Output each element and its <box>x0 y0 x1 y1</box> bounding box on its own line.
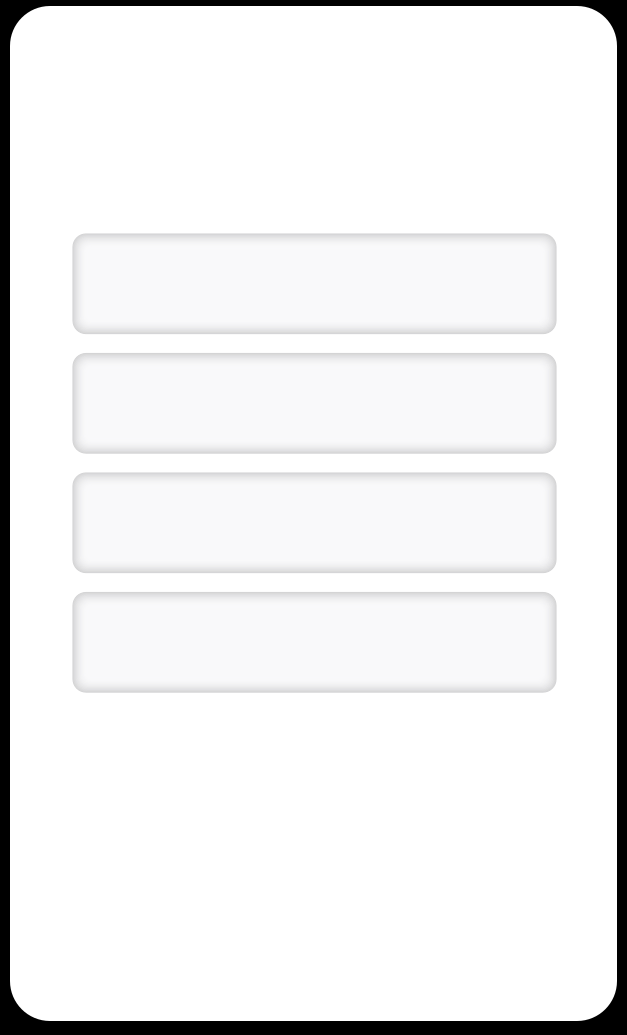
button[interactable]: Loading content <box>73 353 556 453</box>
button[interactable]: Loading content <box>73 592 556 692</box>
button[interactable]: Loading content <box>73 234 556 334</box>
button[interactable]: Loading content <box>73 473 556 573</box>
